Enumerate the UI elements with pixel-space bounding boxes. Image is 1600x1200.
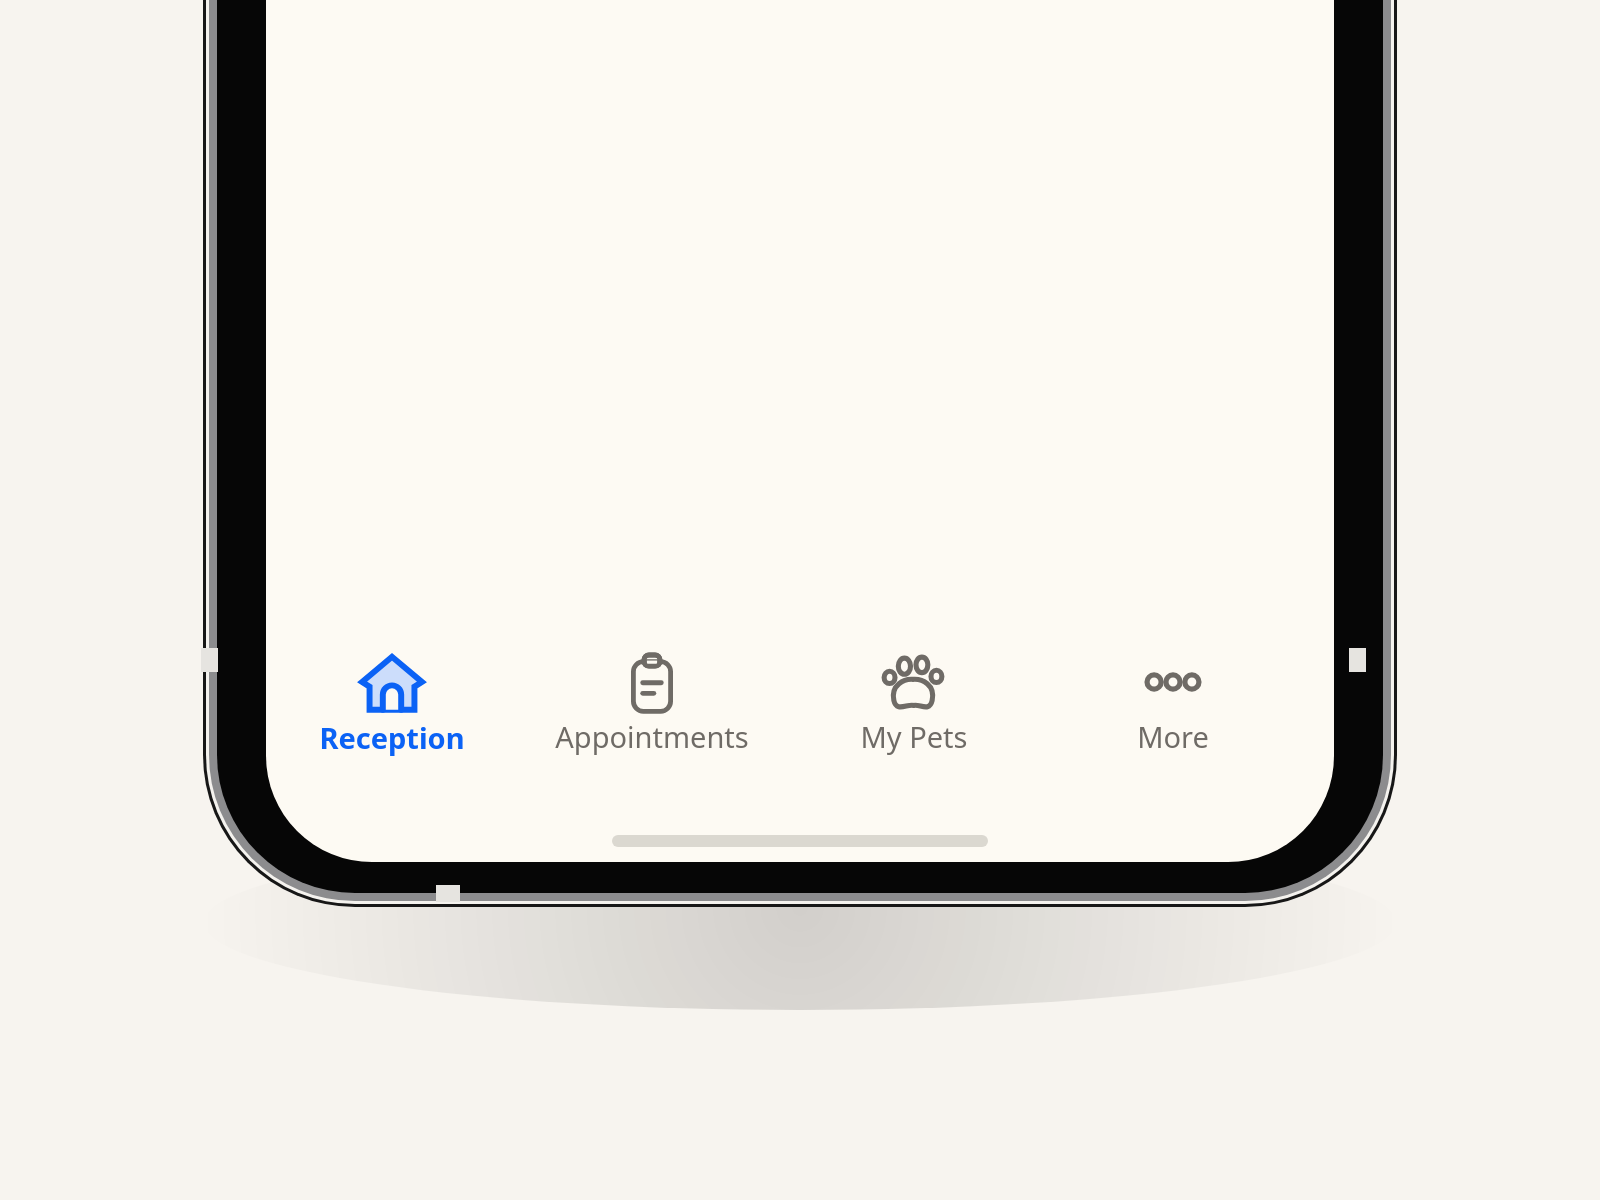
button[interactable]: My Pets tab: [786, 636, 1046, 786]
staticText: Reception: [172, 718, 612, 774]
staticText: Appointments: [432, 717, 872, 773]
button[interactable]: More tab: [1046, 636, 1306, 786]
staticText: My Pets: [694, 717, 1134, 773]
button[interactable]: Reception tab: [266, 636, 526, 786]
button[interactable]: Appointments tab: [526, 636, 786, 786]
staticText: More: [953, 717, 1393, 773]
